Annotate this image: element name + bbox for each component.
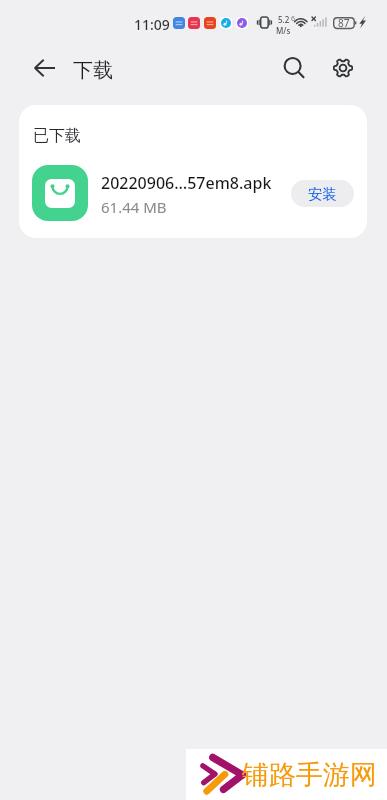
- button[interactable]: Settings: [321, 46, 365, 90]
- button[interactable]: Search: [272, 46, 316, 90]
- staticText: 下载: [73, 58, 113, 83]
- staticText: 11:09: [134, 15, 170, 34]
- staticText: 已下载: [33, 126, 81, 146]
- button[interactable]: Back: [22, 46, 66, 90]
- staticText: 铺路手游网: [242, 758, 377, 792]
- staticText: 87: [338, 16, 350, 30]
- staticText: 6: [291, 14, 296, 24]
- staticText: 61.44 MB: [101, 197, 167, 217]
- staticText: M/s: [276, 25, 291, 36]
- button[interactable]: 20220906…57em8.apk: [19, 155, 367, 231]
- staticText: 20220906…57em8.apk: [101, 172, 272, 194]
- staticText: 5.2: [278, 14, 290, 25]
- button[interactable]: 安装: [291, 180, 354, 207]
- staticText: 安装: [308, 185, 337, 203]
